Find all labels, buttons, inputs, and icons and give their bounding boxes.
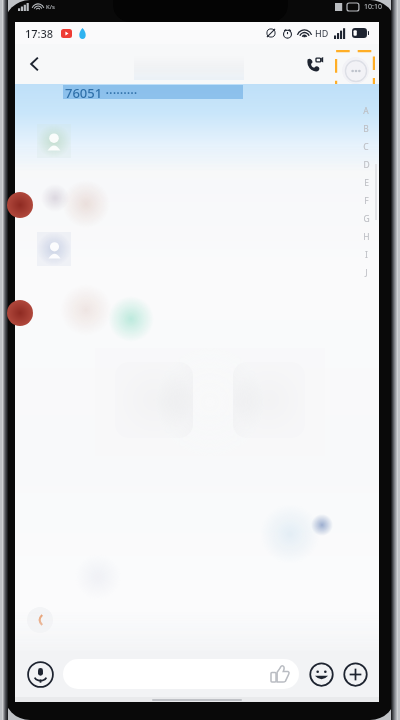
staticText: 10:10 xyxy=(364,2,382,12)
staticText: C xyxy=(363,141,369,153)
button[interactable]: Chat details xyxy=(335,50,375,90)
staticText: J xyxy=(365,267,368,279)
staticText: 76051 ········· xyxy=(65,84,138,102)
staticText: K/s xyxy=(46,3,55,11)
staticText: A xyxy=(363,105,369,117)
staticText: I xyxy=(365,249,368,261)
button[interactable]: Back xyxy=(15,44,55,84)
button[interactable]: Send like xyxy=(269,663,291,685)
staticText: E xyxy=(364,177,369,189)
button[interactable]: Video call xyxy=(297,47,331,81)
staticText: D xyxy=(363,159,370,171)
staticText: HD xyxy=(315,27,329,39)
button[interactable]: More options xyxy=(339,658,371,690)
staticText: H xyxy=(363,231,370,243)
button[interactable]: Alphabet index xyxy=(360,102,372,282)
staticText: F xyxy=(364,195,369,207)
staticText: G xyxy=(363,213,370,225)
button[interactable]: Message input xyxy=(63,659,299,689)
button[interactable]: Emoji xyxy=(305,658,337,690)
button[interactable]: Scroll up xyxy=(27,607,53,633)
button[interactable]: Voice message xyxy=(23,657,57,691)
staticText: 17:38 xyxy=(25,26,54,41)
staticText: B xyxy=(363,123,369,135)
